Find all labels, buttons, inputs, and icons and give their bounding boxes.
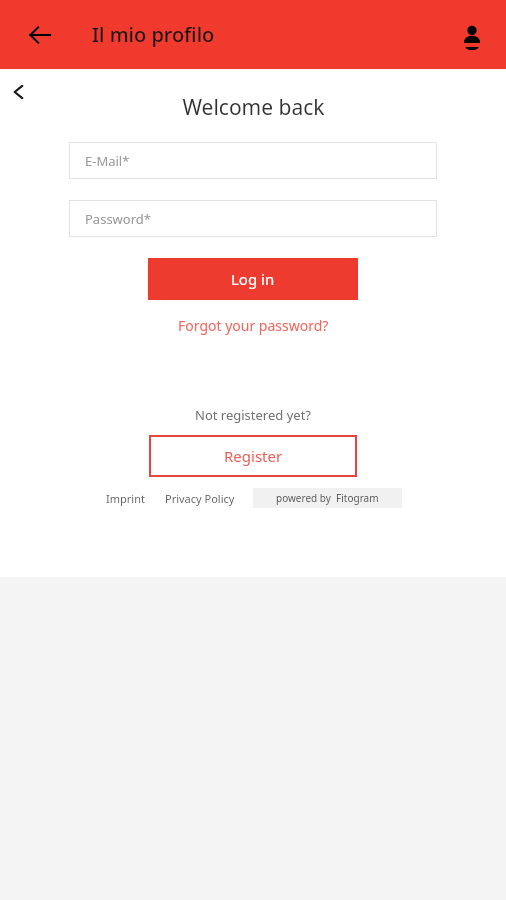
staticText: Welcome back [182, 93, 325, 122]
staticText: Imprint [106, 491, 145, 506]
staticText: powered by Fitogram [276, 491, 379, 505]
button[interactable]: Password* [69, 200, 437, 237]
button[interactable]: Account [448, 11, 496, 59]
staticText: Register [224, 446, 283, 466]
staticText: Password* [85, 210, 151, 228]
button[interactable]: powered by Fitogram [253, 488, 402, 508]
staticText: Il mio profilo [92, 21, 215, 48]
staticText: Log in [231, 269, 275, 289]
button[interactable]: Forgot your password? [178, 316, 329, 335]
button[interactable]: Back [16, 11, 64, 59]
button[interactable]: Imprint [106, 491, 145, 506]
button[interactable]: Navigate back [2, 75, 36, 109]
button[interactable]: Register [149, 435, 357, 477]
staticText: Privacy Policy [165, 491, 235, 506]
button[interactable]: Privacy Policy [165, 491, 235, 506]
staticText: Not registered yet? [195, 406, 311, 424]
button[interactable]: Log in [148, 258, 358, 300]
staticText: Forgot your password? [178, 316, 329, 335]
staticText: E-Mail* [85, 152, 130, 170]
button[interactable]: E-Mail* [69, 142, 437, 179]
